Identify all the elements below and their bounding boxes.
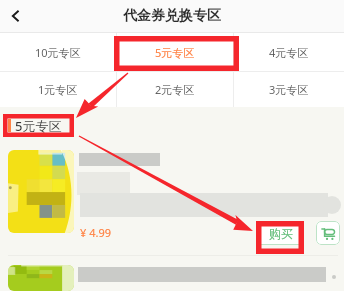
button[interactable]: 3元专区 — [234, 72, 344, 107]
button[interactable]: Add to cart — [316, 221, 340, 245]
staticText: 3元专区 — [269, 82, 309, 97]
button[interactable]: 10元专区 — [0, 33, 116, 71]
staticText: 购买 — [269, 226, 293, 241]
staticText: 5元专区 — [15, 117, 62, 133]
button[interactable]: 4元专区 — [234, 33, 344, 71]
button[interactable]: ¥ 4.99 — [0, 265, 344, 291]
button[interactable]: ¥ 4.99 — [0, 150, 344, 249]
button[interactable]: Back — [6, 6, 26, 26]
button[interactable]: 购买 — [258, 221, 304, 245]
button[interactable]: 2元专区 — [117, 72, 233, 107]
staticText: 2元专区 — [155, 82, 195, 97]
staticText: 4元专区 — [269, 45, 309, 60]
staticText: 10元专区 — [35, 45, 81, 60]
button[interactable]: 5元专区 — [117, 33, 233, 71]
staticText: 5元专区 — [155, 45, 195, 60]
staticText: 代金券兑换专区 — [123, 7, 221, 25]
button[interactable]: 1元专区 — [0, 72, 116, 107]
staticText: ¥ 4.99 — [80, 225, 111, 240]
staticText: 1元专区 — [38, 82, 78, 97]
